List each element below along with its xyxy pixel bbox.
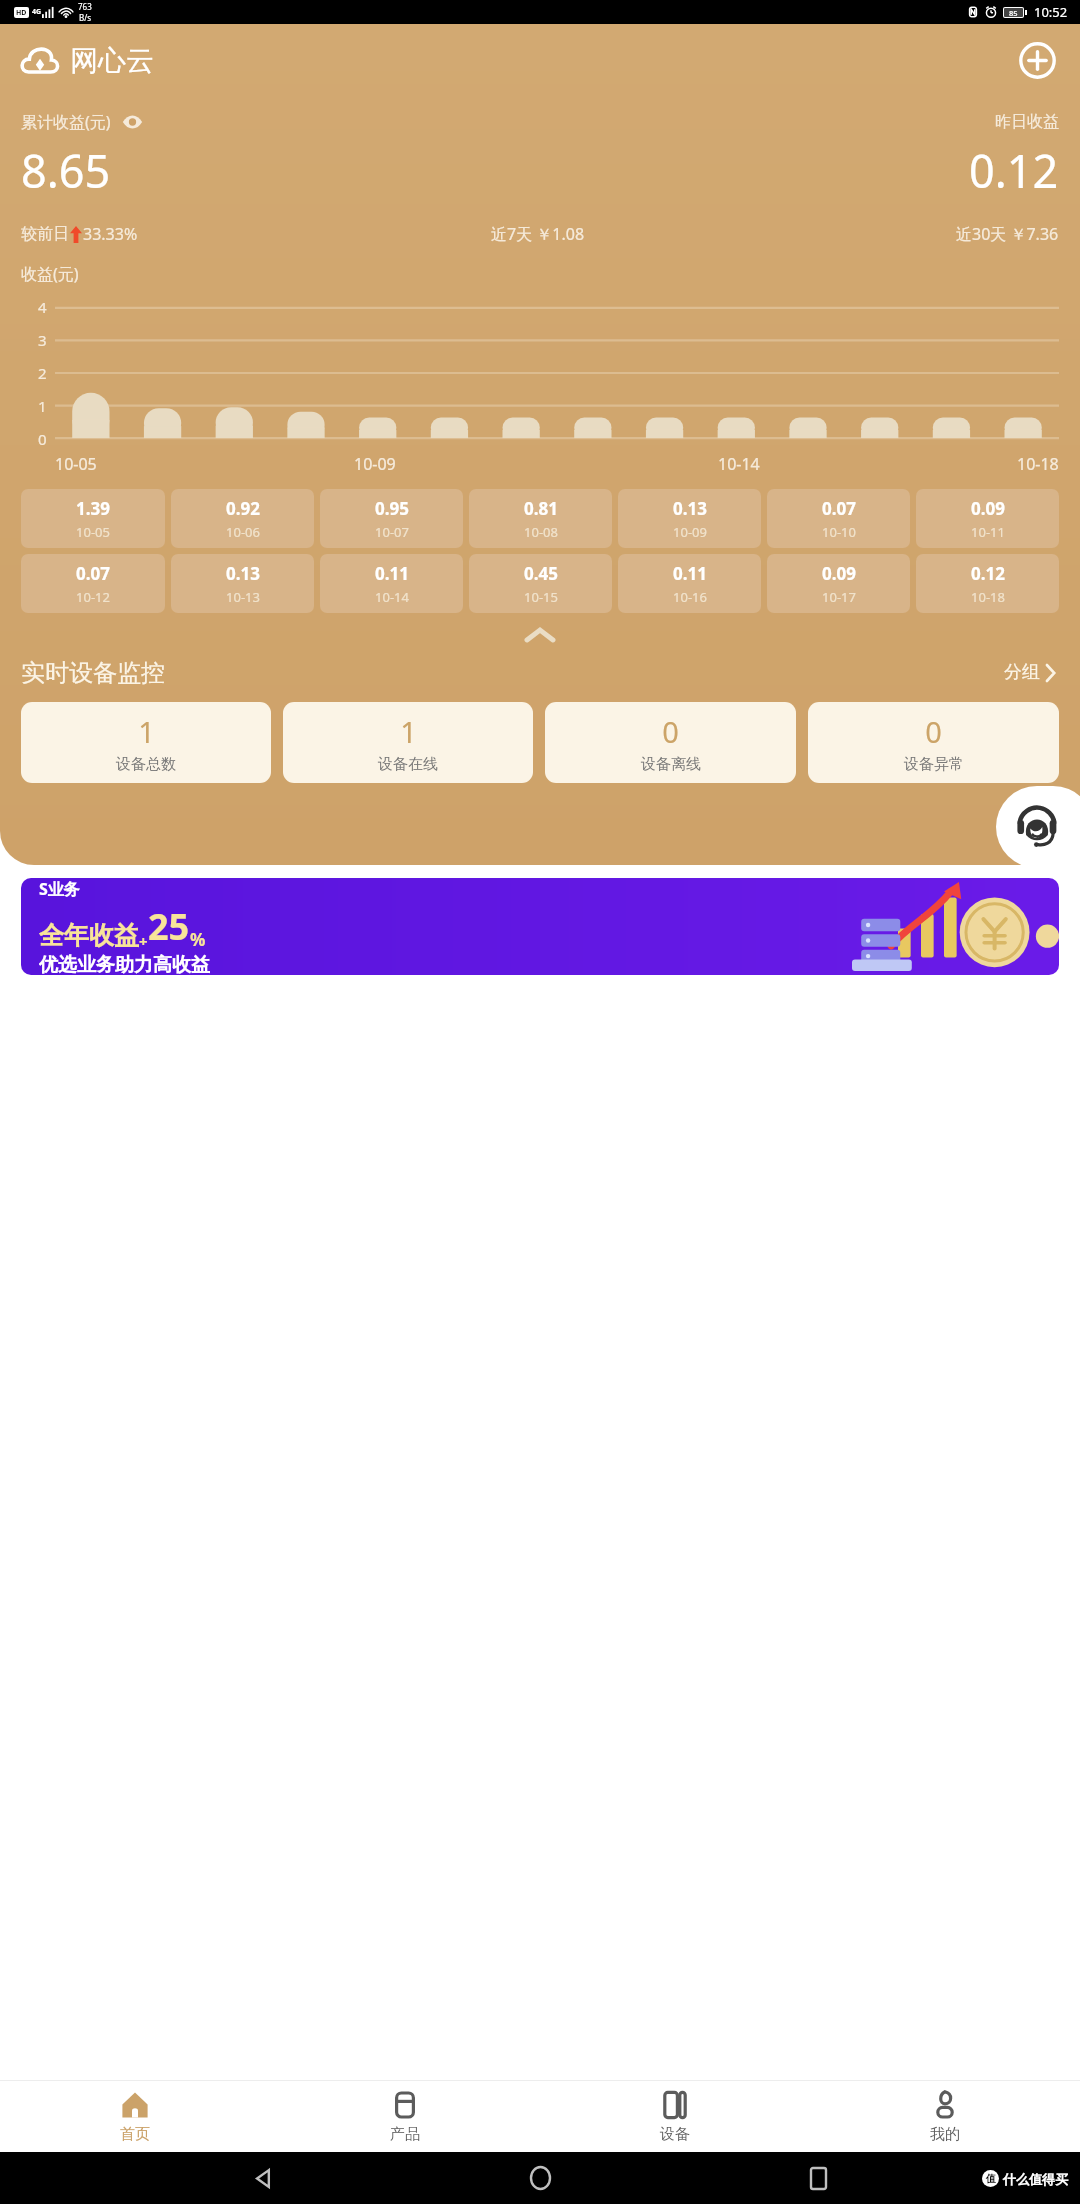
staticText: 10-13 xyxy=(226,588,260,606)
staticText: 实时设备监控 xyxy=(21,658,165,688)
staticText: 0.09 xyxy=(971,497,1005,520)
staticText: 设备在线 xyxy=(378,755,438,774)
staticText: 0.13 xyxy=(673,497,707,520)
button[interactable]: 设备 xyxy=(540,2081,810,2152)
staticText: 10-18 xyxy=(1017,453,1059,475)
staticText: 累计收益(元) xyxy=(21,111,111,133)
staticText: 4 xyxy=(38,297,47,317)
staticText: 10-12 xyxy=(76,588,110,606)
staticText: 昨日收益 xyxy=(995,112,1059,132)
staticText: 1 xyxy=(400,712,417,751)
button[interactable]: 1 xyxy=(283,702,533,783)
staticText: 10-11 xyxy=(971,523,1005,541)
staticText: 近30天 ￥7.36 xyxy=(956,223,1059,245)
staticText: 3 xyxy=(38,330,47,350)
staticText: 设备 xyxy=(660,2125,690,2144)
staticText: 10:52 xyxy=(1034,3,1068,21)
staticText: B/s xyxy=(79,12,92,23)
staticText: 10-08 xyxy=(524,523,558,541)
staticText: 0.92 xyxy=(226,497,260,520)
staticText: 0 xyxy=(38,429,47,449)
button[interactable]: 0.92 xyxy=(171,489,314,548)
staticText: 设备异常 xyxy=(904,755,964,774)
button[interactable]: 分组 xyxy=(1000,657,1059,688)
staticText: 10-14 xyxy=(375,588,409,606)
button[interactable]: Collapse xyxy=(514,618,566,652)
button[interactable]: Recents xyxy=(803,2163,833,2193)
staticText: 全年收益 xyxy=(39,920,139,951)
button[interactable]: 1 xyxy=(21,702,271,783)
staticText: 10-07 xyxy=(375,523,409,541)
staticText: 10-17 xyxy=(822,588,856,606)
staticText: 设备总数 xyxy=(116,755,176,774)
staticText: 优选业务助力高收益 xyxy=(39,953,210,975)
staticText: 0.09 xyxy=(822,562,856,585)
staticText: 0.07 xyxy=(76,562,110,585)
button[interactable]: 首页 xyxy=(0,2081,270,2152)
button[interactable]: 产品 xyxy=(270,2081,540,2152)
staticText: 2 xyxy=(38,363,47,383)
staticText: 0.11 xyxy=(375,562,409,585)
button[interactable]: 0.13 xyxy=(171,554,314,613)
staticText: 收益(元) xyxy=(21,263,79,285)
staticText: 设备离线 xyxy=(641,755,701,774)
staticText: 10-15 xyxy=(524,588,558,606)
staticText: 10-09 xyxy=(354,453,396,475)
button[interactable]: 1.39 xyxy=(21,489,165,548)
staticText: 0.11 xyxy=(673,562,707,585)
staticText: 0.81 xyxy=(524,497,558,520)
button[interactable]: 0.11 xyxy=(618,554,761,613)
staticText: 0.95 xyxy=(375,497,409,520)
button[interactable]: 0.45 xyxy=(469,554,612,613)
staticText: 值 xyxy=(986,2172,996,2185)
staticText: 1 xyxy=(38,396,47,416)
button[interactable]: 0.07 xyxy=(767,489,910,548)
staticText: 0.45 xyxy=(524,562,558,585)
button[interactable]: Customer service xyxy=(996,786,1080,868)
staticText: 10-16 xyxy=(673,588,707,606)
staticText: HD xyxy=(16,8,27,18)
staticText: 0 xyxy=(925,712,942,751)
staticText: 8.65 xyxy=(21,140,111,201)
staticText: 10-18 xyxy=(971,588,1005,606)
staticText: 10-06 xyxy=(226,523,260,541)
staticText: 较前日 xyxy=(21,224,69,244)
button[interactable]: 我的 xyxy=(810,2081,1080,2152)
button[interactable]: S业务 xyxy=(21,878,1059,975)
staticText: 1.39 xyxy=(76,497,110,520)
staticText: % xyxy=(190,928,206,951)
button[interactable]: Toggle visibility xyxy=(120,110,144,134)
staticText: 0 xyxy=(662,712,679,751)
staticText: 4G xyxy=(32,7,42,17)
button[interactable]: 0.09 xyxy=(767,554,910,613)
staticText: 10-05 xyxy=(76,523,110,541)
staticText: 10-10 xyxy=(822,523,856,541)
button[interactable]: 0.13 xyxy=(618,489,761,548)
staticText: 产品 xyxy=(390,2125,420,2144)
staticText: 近7天 ￥1.08 xyxy=(491,223,585,245)
button[interactable]: 0.81 xyxy=(469,489,612,548)
button[interactable]: 0 xyxy=(808,702,1059,783)
button[interactable]: 0.07 xyxy=(21,554,165,613)
staticText: 0.13 xyxy=(226,562,260,585)
staticText: 33.33% xyxy=(83,223,138,245)
staticText: 网心云 xyxy=(70,43,154,78)
staticText: 10-05 xyxy=(55,453,97,475)
button[interactable]: 0.95 xyxy=(320,489,463,548)
button[interactable]: 0.12 xyxy=(916,554,1059,613)
staticText: 763 xyxy=(78,1,92,12)
button[interactable]: 0 xyxy=(545,702,796,783)
staticText: 首页 xyxy=(120,2125,150,2144)
button[interactable]: Add xyxy=(1015,38,1059,82)
button[interactable]: 0.09 xyxy=(916,489,1059,548)
staticText: 1 xyxy=(138,712,155,751)
button[interactable]: Back xyxy=(248,2163,278,2193)
staticText: 10-14 xyxy=(718,453,760,475)
staticText: S业务 xyxy=(39,878,80,900)
staticText: 25 xyxy=(148,902,190,951)
button[interactable]: 0.11 xyxy=(320,554,463,613)
staticText: 我的 xyxy=(930,2125,960,2144)
staticText: 0.12 xyxy=(969,140,1059,201)
staticText: 分组 xyxy=(1004,661,1040,684)
button[interactable]: Home xyxy=(525,2163,555,2193)
